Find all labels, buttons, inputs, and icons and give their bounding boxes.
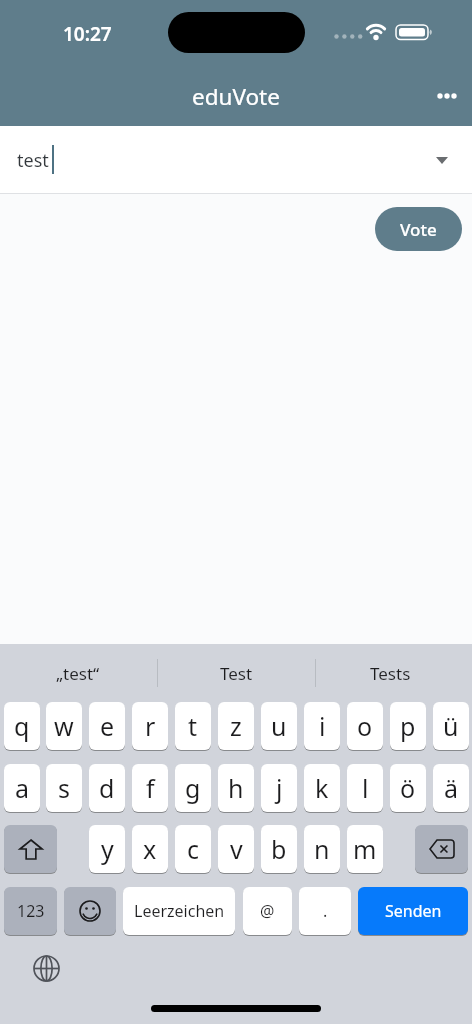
staticText: ö (400, 771, 416, 805)
staticText: . (323, 900, 328, 922)
staticText: u (271, 709, 287, 743)
button[interactable]: n (304, 825, 340, 873)
staticText: t (188, 709, 198, 743)
staticText: ä (444, 771, 459, 805)
button[interactable]: a (4, 764, 40, 812)
button[interactable] (436, 82, 464, 110)
button[interactable]: Test (166, 652, 306, 694)
staticText: Vote (400, 218, 437, 241)
button[interactable]: Tests (320, 652, 460, 694)
staticText: Senden (385, 900, 442, 922)
staticText: f (146, 771, 155, 805)
staticText: eduVote (192, 81, 280, 112)
button[interactable]: t (175, 702, 211, 750)
staticText: ü (443, 709, 459, 743)
button[interactable]: m (347, 825, 383, 873)
staticText: m (353, 832, 377, 866)
button[interactable]: y (89, 825, 125, 873)
staticText: e (100, 709, 115, 743)
button[interactable]: r (132, 702, 168, 750)
button[interactable]: w (46, 702, 82, 750)
staticText: @ (260, 900, 275, 922)
button[interactable]: i (304, 702, 340, 750)
button[interactable]: s (46, 764, 82, 812)
button[interactable]: „test“ (8, 652, 148, 694)
button[interactable]: @ (243, 887, 292, 935)
staticText: d (99, 771, 115, 805)
button[interactable] (64, 887, 116, 935)
button[interactable] (4, 825, 57, 873)
button[interactable]: u (261, 702, 297, 750)
button[interactable]: ä (433, 764, 469, 812)
button[interactable]: h (218, 764, 254, 812)
staticText: b (271, 832, 287, 866)
button[interactable] (415, 825, 468, 873)
button[interactable]: p (390, 702, 426, 750)
button[interactable]: o (347, 702, 383, 750)
button[interactable]: g (175, 764, 211, 812)
staticText: v (230, 832, 243, 866)
button[interactable]: q (4, 702, 40, 750)
staticText: Tests (370, 662, 411, 685)
button[interactable]: . (299, 887, 351, 935)
button[interactable]: test (0, 126, 472, 194)
staticText: z (230, 709, 242, 743)
button[interactable]: c (175, 825, 211, 873)
button[interactable]: b (261, 825, 297, 873)
staticText: k (315, 771, 329, 805)
staticText: p (400, 709, 416, 743)
button[interactable]: f (132, 764, 168, 812)
staticText: l (362, 771, 369, 805)
button[interactable]: Leerzeichen (123, 887, 235, 935)
staticText: y (101, 832, 114, 866)
button[interactable]: z (218, 702, 254, 750)
button[interactable]: d (89, 764, 125, 812)
staticText: h (228, 771, 244, 805)
staticText: Leerzeichen (134, 900, 225, 922)
staticText: 10:27 (63, 21, 112, 47)
staticText: j (276, 771, 283, 805)
button[interactable]: x (132, 825, 168, 873)
staticText: i (319, 709, 326, 743)
staticText: n (314, 832, 330, 866)
staticText: q (14, 709, 30, 743)
staticText: w (54, 709, 74, 743)
button[interactable]: l (347, 764, 383, 812)
staticText: Test (220, 662, 253, 685)
staticText: g (185, 771, 201, 805)
button[interactable] (33, 955, 60, 982)
button[interactable]: ö (390, 764, 426, 812)
button[interactable]: Vote (375, 207, 462, 251)
staticText: o (357, 709, 373, 743)
staticText: „test“ (56, 662, 100, 685)
staticText: c (187, 832, 200, 866)
staticText: a (15, 771, 30, 805)
button[interactable]: ü (433, 702, 469, 750)
button[interactable]: v (218, 825, 254, 873)
staticText: 123 (17, 900, 45, 922)
staticText: r (145, 709, 156, 743)
button[interactable]: 123 (4, 887, 57, 935)
staticText: s (58, 771, 70, 805)
button[interactable]: k (304, 764, 340, 812)
button[interactable]: j (261, 764, 297, 812)
button[interactable]: e (89, 702, 125, 750)
staticText: test (17, 148, 49, 173)
button[interactable]: Senden (358, 887, 468, 935)
staticText: x (143, 832, 157, 866)
